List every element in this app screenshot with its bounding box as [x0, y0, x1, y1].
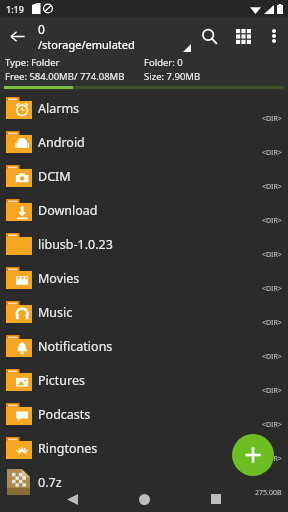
staticText: Alarms: [38, 100, 80, 117]
button[interactable]: libusb-1.0.23: [0, 227, 288, 261]
button[interactable]: Recents: [203, 486, 229, 512]
staticText: Music: [38, 304, 73, 321]
button[interactable]: Grid view: [226, 19, 260, 53]
staticText: Free: 584.00MB/ 774.08MB: [5, 70, 144, 83]
staticText: <DIR>: [262, 352, 282, 362]
staticText: Movies: [38, 270, 80, 287]
button[interactable]: Music: [0, 295, 288, 329]
staticText: <DIR>: [262, 318, 282, 328]
button[interactable]: 0.7z: [0, 465, 288, 499]
staticText: Ringtones: [38, 440, 98, 457]
staticText: <DIR>: [262, 114, 282, 124]
button[interactable]: Alarms: [0, 91, 288, 125]
staticText: <DIR>: [262, 386, 282, 396]
button[interactable]: Movies: [0, 261, 288, 295]
button[interactable]: Notifications: [0, 329, 288, 363]
button[interactable]: Back: [59, 486, 85, 512]
button[interactable]: Ringtones: [0, 431, 288, 465]
staticText: <DIR>: [262, 284, 282, 294]
staticText: Podcasts: [38, 406, 91, 423]
button[interactable]: Home: [131, 486, 157, 512]
staticText: <DIR>: [262, 216, 282, 226]
staticText: <DIR>: [262, 148, 282, 158]
staticText: Notifications: [38, 338, 113, 355]
staticText: <DIR>: [262, 182, 282, 192]
button[interactable]: Back: [0, 19, 34, 53]
staticText: /storage/emulated: [38, 37, 135, 52]
staticText: DCIM: [38, 168, 71, 185]
staticText: <DIR>: [262, 420, 282, 430]
button[interactable]: Pictures: [0, 363, 288, 397]
button[interactable]: DCIM: [0, 159, 288, 193]
button[interactable]: More options: [260, 22, 288, 50]
button[interactable]: Podcasts: [0, 397, 288, 431]
button[interactable]: Android: [0, 125, 288, 159]
staticText: <DIR>: [262, 250, 282, 260]
staticText: Folder: 0: [144, 56, 283, 69]
button[interactable]: Download: [0, 193, 288, 227]
staticText: 1:19: [6, 3, 24, 15]
staticText: 0.7z: [38, 474, 62, 491]
staticText: Size: 7.90MB: [144, 70, 283, 83]
staticText: 0: [38, 21, 45, 37]
staticText: <DIR>: [262, 454, 282, 464]
staticText: Pictures: [38, 372, 85, 389]
button[interactable]: Add: [232, 434, 274, 476]
staticText: 275.00B: [255, 488, 282, 498]
button[interactable]: Search: [192, 19, 226, 53]
staticText: Android: [38, 134, 85, 151]
staticText: Type: Folder: [5, 56, 144, 69]
staticText: libusb-1.0.23: [38, 236, 113, 253]
staticText: Download: [38, 202, 98, 219]
